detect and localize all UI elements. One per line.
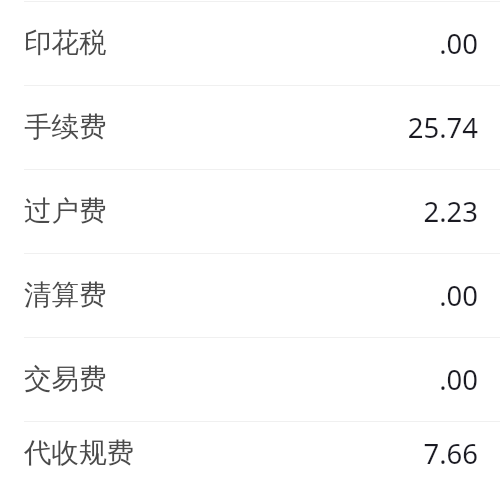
staticText: 手续费 xyxy=(24,110,107,145)
staticText: .00 xyxy=(439,277,478,314)
staticText: 印花税 xyxy=(24,26,107,61)
staticText: 25.74 xyxy=(407,109,478,146)
button[interactable]: 印花税 xyxy=(0,2,500,85)
button[interactable]: 清算费 xyxy=(0,254,500,337)
staticText: 交易费 xyxy=(24,362,107,397)
staticText: 清算费 xyxy=(24,278,107,313)
button[interactable]: 过户费 xyxy=(0,170,500,253)
staticText: 过户费 xyxy=(24,194,107,229)
staticText: 2.23 xyxy=(423,193,478,230)
staticText: 代收规费 xyxy=(24,436,134,471)
button[interactable]: 交易费 xyxy=(0,338,500,421)
button[interactable]: 代收规费 xyxy=(0,422,500,485)
staticText: 7.66 xyxy=(423,435,478,472)
staticText: .00 xyxy=(439,361,478,398)
staticText: .00 xyxy=(439,25,478,62)
button[interactable]: 手续费 xyxy=(0,86,500,169)
